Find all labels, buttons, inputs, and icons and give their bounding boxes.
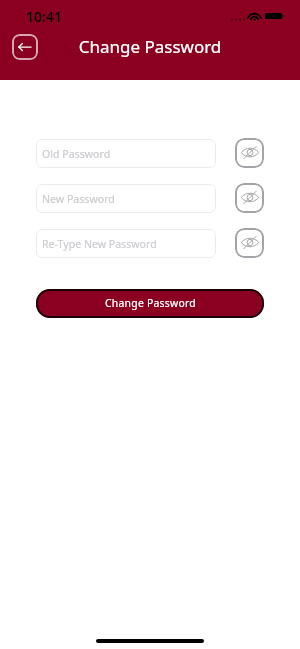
staticText: New Password (42, 192, 115, 206)
staticText: Re-Type New Password (42, 237, 157, 251)
staticText: Change Password (105, 296, 196, 310)
staticText: Change Password (0, 35, 300, 58)
button[interactable]: Toggle password visibility (235, 228, 264, 258)
button[interactable]: Re-Type New Password (36, 229, 216, 258)
staticText: 10:41 (26, 7, 62, 26)
button[interactable]: New Password (36, 184, 216, 213)
button[interactable]: Old Password (36, 139, 216, 168)
button[interactable]: Back (12, 34, 38, 60)
staticText: Old Password (42, 147, 111, 161)
button[interactable]: Toggle password visibility (235, 138, 264, 168)
button[interactable]: Change Password (36, 289, 264, 318)
button[interactable]: Toggle password visibility (235, 183, 264, 213)
